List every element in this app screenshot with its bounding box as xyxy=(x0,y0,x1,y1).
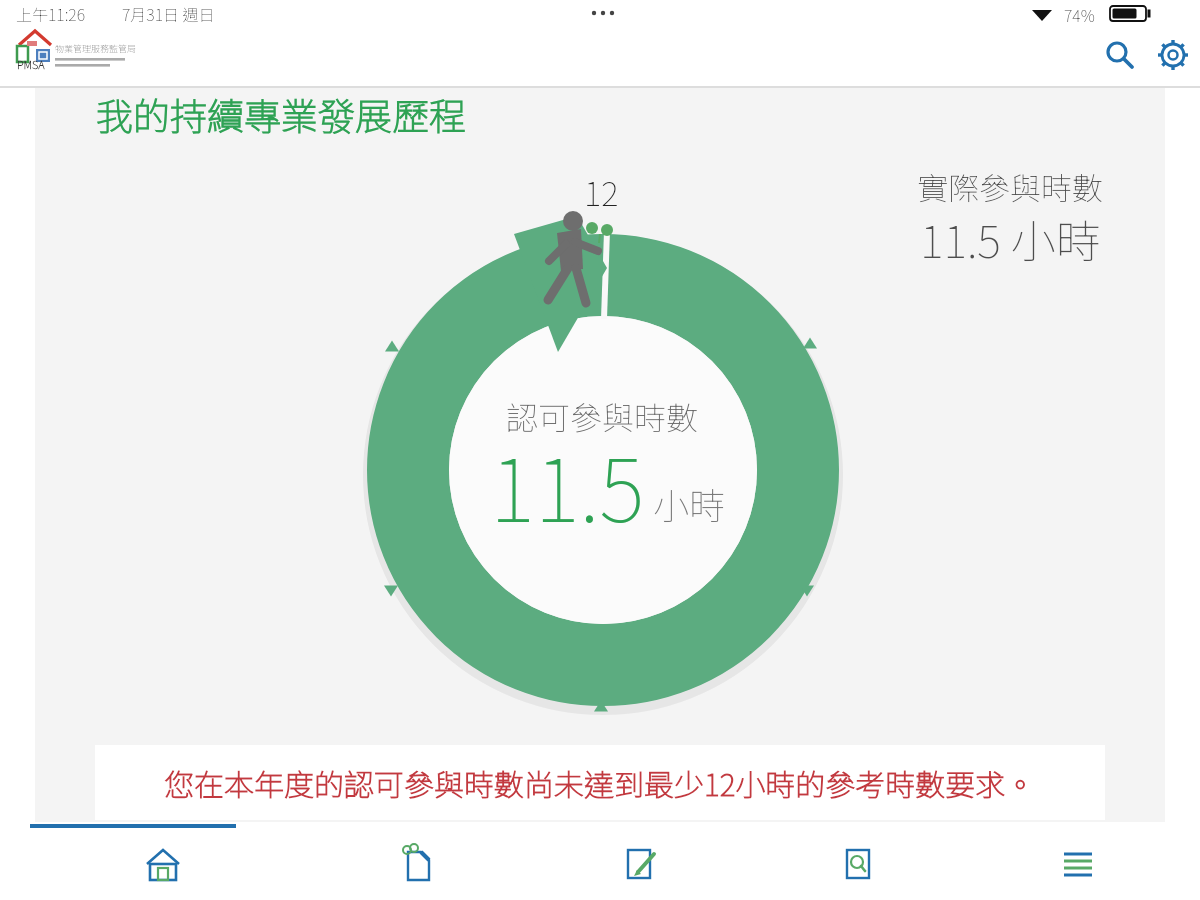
button[interactable] xyxy=(1152,34,1196,78)
button[interactable] xyxy=(610,834,670,894)
staticText: 您在本年度的認可參與時數尚未達到最少12小時的參考時數要求。 xyxy=(164,761,1036,804)
button[interactable] xyxy=(133,834,193,894)
staticText: 實際參與時數 xyxy=(917,164,1103,209)
staticText: 認可參與時數 xyxy=(506,393,699,439)
staticText: 12 xyxy=(584,168,619,216)
button[interactable] xyxy=(828,834,888,894)
staticText: 74% xyxy=(1064,3,1095,26)
button[interactable] xyxy=(1098,34,1142,78)
button[interactable] xyxy=(1048,834,1108,894)
button[interactable] xyxy=(388,834,448,894)
staticText: PMSA xyxy=(17,56,45,72)
staticText: 11.5 小時 xyxy=(920,206,1101,271)
staticText: 上午11:26 xyxy=(16,2,86,25)
staticText: 我的持續專業發展歷程 xyxy=(96,87,466,141)
staticText: 11.5 xyxy=(490,422,645,547)
staticText: 7月31日 週日 xyxy=(122,2,215,25)
staticText: 小時 xyxy=(653,477,726,529)
staticText: 物業管理服務監管局 xyxy=(55,42,137,55)
